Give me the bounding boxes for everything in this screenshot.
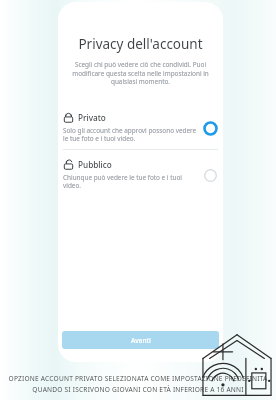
button[interactable]: Locked: [58, 110, 223, 145]
staticText: OPZIONE ACCOUNT PRIVATO SELEZIONATA COME…: [0, 374, 276, 383]
staticText: Privato: [78, 112, 106, 123]
staticText: QUANDO SI ISCRIVONO GIOVANI CON ETÀ INFE…: [0, 385, 276, 394]
staticText: Avanti: [131, 336, 151, 345]
other: Locked: [63, 112, 74, 123]
staticText: Pubblico: [78, 159, 112, 170]
other: Unlocked: [63, 159, 74, 170]
staticText: Privacy dell'account: [58, 35, 223, 53]
staticText: Solo gli account che approvi possono ved…: [63, 126, 198, 143]
button[interactable]: Pubblico option: [202, 167, 218, 183]
button[interactable]: Unlocked: [58, 157, 223, 192]
button[interactable]: Privato option: [202, 120, 218, 136]
staticText: Chiunque può vedere le tue foto e i tuoi…: [63, 173, 198, 190]
staticText: Scegli chi può vedere ciò che condividi.…: [68, 60, 213, 85]
button[interactable]: Avanti: [62, 331, 219, 349]
other: Smart home logo: [200, 332, 274, 398]
